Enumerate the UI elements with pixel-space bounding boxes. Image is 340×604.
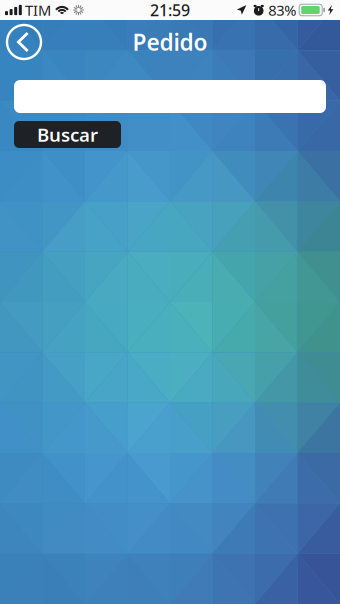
button[interactable]: Buscar [14, 121, 121, 148]
staticText: 83% [268, 0, 296, 20]
button[interactable]: Back [0, 20, 48, 64]
staticText: Buscar [37, 122, 98, 147]
staticText: TIM [25, 0, 51, 20]
staticText: 21:59 [150, 0, 190, 21]
staticText: Pedido [132, 27, 207, 57]
